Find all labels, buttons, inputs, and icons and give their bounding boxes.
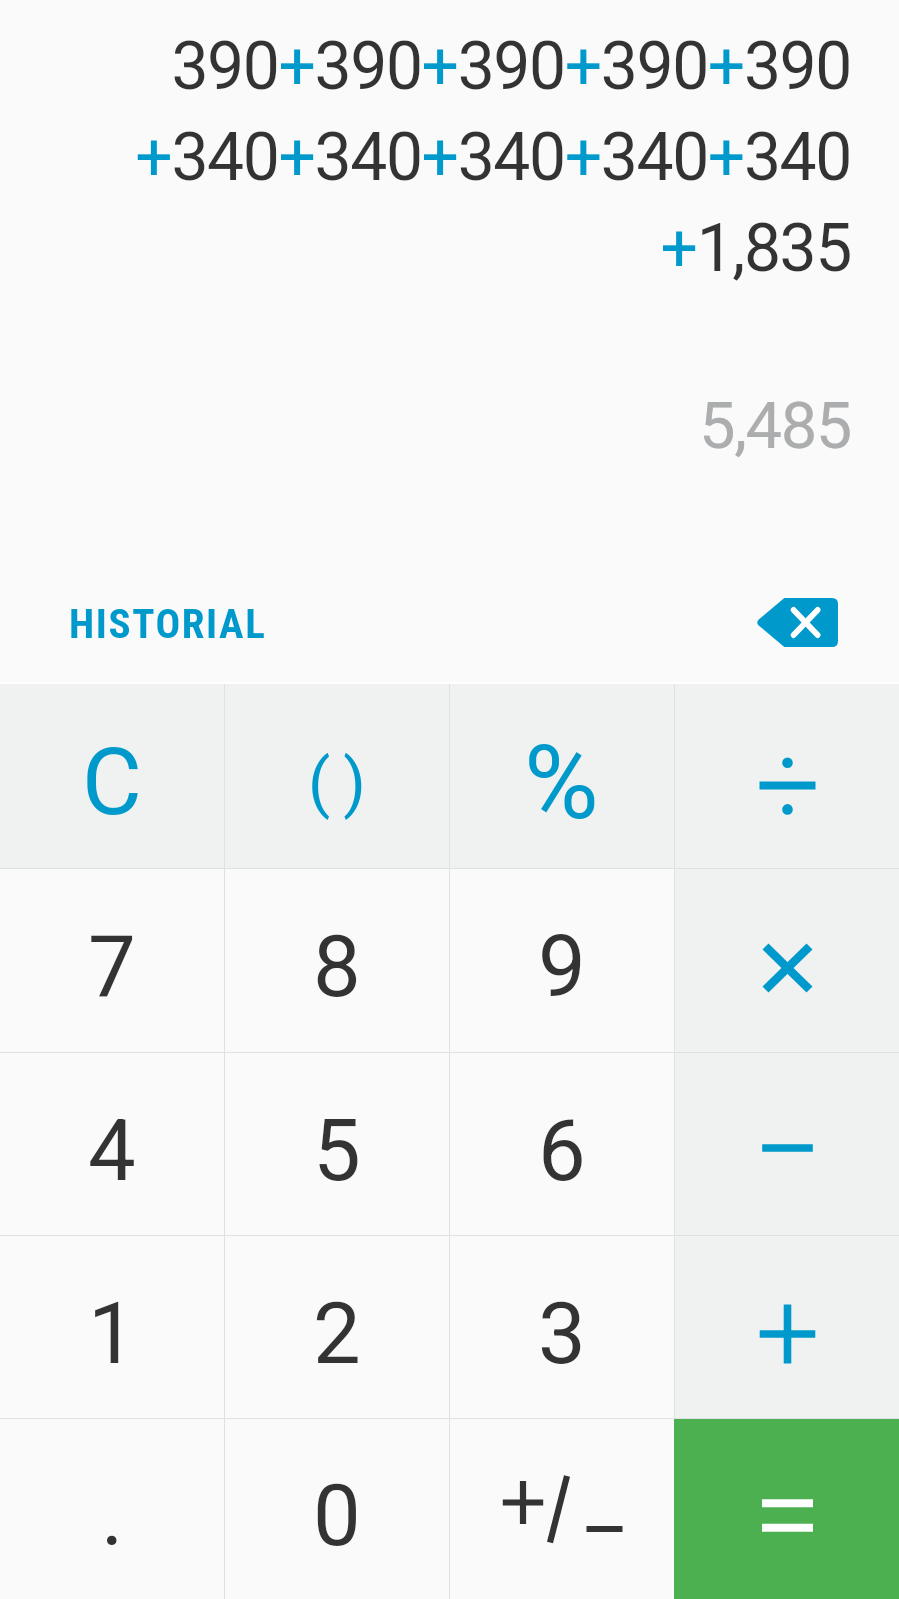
button[interactable]: ÷ — [674, 684, 899, 868]
staticText: % — [524, 723, 599, 843]
button[interactable]: × — [674, 868, 899, 1052]
button[interactable]: HISTORIAL — [37, 586, 299, 662]
staticText: 2 — [313, 1284, 361, 1384]
button[interactable]: . — [0, 1418, 224, 1599]
staticText: 4 — [88, 1101, 136, 1201]
staticText: () — [308, 745, 379, 821]
button[interactable]: C — [0, 684, 224, 868]
staticText: 3 — [538, 1284, 586, 1384]
staticText: HISTORIAL — [69, 600, 267, 648]
button[interactable]: Backspace — [726, 577, 867, 667]
staticText: 7 — [88, 917, 136, 1017]
button[interactable]: 1 — [0, 1235, 224, 1418]
staticText: 5,485 — [0, 388, 851, 464]
staticText: 6 — [538, 1101, 586, 1201]
staticText: 8 — [313, 917, 361, 1017]
staticText: 1 — [88, 1284, 136, 1384]
button[interactable]: 6 — [449, 1052, 674, 1235]
staticText: 9 — [538, 917, 586, 1017]
button[interactable]: 0 — [224, 1418, 449, 1599]
button[interactable]: 2 — [224, 1235, 449, 1418]
button[interactable]: 4 — [0, 1052, 224, 1235]
button[interactable]: % — [449, 684, 674, 868]
staticText: 0 — [313, 1466, 361, 1566]
button[interactable]: 9 — [449, 868, 674, 1052]
button[interactable]: = — [674, 1418, 899, 1599]
button[interactable]: +/− — [449, 1418, 674, 1599]
staticText: . — [101, 1466, 124, 1566]
staticText: 390+390+390+390+390 +340+340+340+340+340… — [0, 28, 851, 287]
button[interactable]: 3 — [449, 1235, 674, 1418]
button[interactable]: + — [674, 1235, 899, 1418]
button[interactable]: () — [224, 684, 449, 868]
button[interactable]: 7 — [0, 868, 224, 1052]
button[interactable]: 8 — [224, 868, 449, 1052]
button[interactable]: 5 — [224, 1052, 449, 1235]
staticText: C — [82, 729, 142, 837]
staticText: 5 — [313, 1101, 361, 1201]
button[interactable]: − — [674, 1052, 899, 1235]
